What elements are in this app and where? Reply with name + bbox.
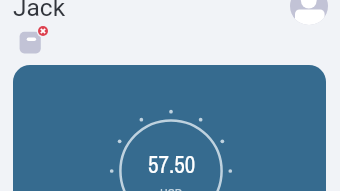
staticText: USD [160,185,183,191]
button[interactable]: Profile [290,0,328,25]
staticText: 57.50 [148,149,196,180]
button[interactable]: 57.50 [13,65,326,191]
button[interactable]: Card disabled [18,25,50,57]
staticText: Jack [13,0,66,22]
